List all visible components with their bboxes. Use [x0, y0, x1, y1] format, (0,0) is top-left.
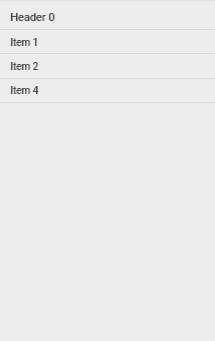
- staticText: Item 4: [11, 85, 40, 97]
- button[interactable]: Item 4: [0, 79, 215, 102]
- staticText: Item 2: [11, 61, 40, 73]
- button[interactable]: Item 2: [0, 54, 215, 78]
- staticText: Header 0: [11, 11, 56, 24]
- button[interactable]: Header 0: [0, 2, 215, 29]
- button[interactable]: Item 1: [0, 30, 215, 53]
- staticText: Item 2: [10, 61, 39, 73]
- staticText: Item 1: [10, 37, 39, 49]
- staticText: Item 1: [11, 37, 40, 49]
- staticText: Item 4: [10, 85, 39, 97]
- staticText: Header 0: [10, 11, 55, 24]
